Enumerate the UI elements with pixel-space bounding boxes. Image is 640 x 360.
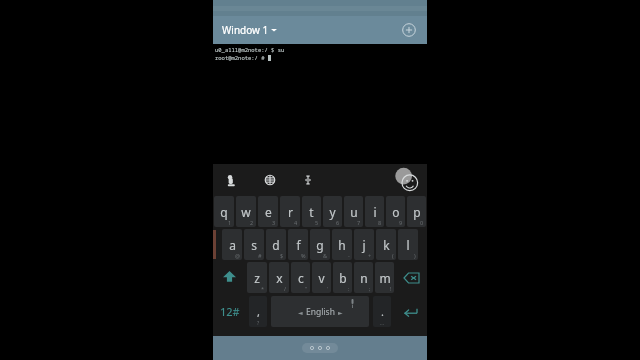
staticText: # <box>258 252 262 259</box>
button[interactable]: a <box>222 229 242 260</box>
staticText: j <box>362 237 366 253</box>
staticText: g <box>316 237 324 253</box>
staticText: ► <box>338 309 343 316</box>
button[interactable]: Move cursor <box>297 169 319 191</box>
staticText: l <box>406 237 410 253</box>
staticText: p <box>413 204 421 220</box>
staticText: c <box>298 270 304 286</box>
button[interactable]: 12# <box>213 294 247 329</box>
staticText: t <box>309 204 314 220</box>
staticText: i <box>373 204 377 220</box>
button[interactable]: i <box>365 196 384 227</box>
button[interactable]: Window 1 <box>220 21 279 39</box>
button[interactable]: c <box>291 262 310 293</box>
staticText: z <box>254 270 260 286</box>
staticText: ; <box>369 285 371 292</box>
staticText: ! <box>390 285 392 292</box>
button[interactable]: w <box>236 196 256 227</box>
staticText: 4 <box>294 219 298 226</box>
button[interactable]: q <box>214 196 234 227</box>
staticText: , <box>257 304 260 319</box>
staticText: English <box>306 306 335 318</box>
button[interactable]: y <box>323 196 342 227</box>
button[interactable]: Emoji <box>393 166 421 194</box>
staticText: Window 1 <box>222 23 269 37</box>
button[interactable]: Enter <box>393 294 427 329</box>
button[interactable]: z <box>247 262 267 293</box>
staticText: y <box>329 204 336 220</box>
staticText: 2 <box>250 219 254 226</box>
staticText: k <box>383 237 390 253</box>
staticText: + <box>368 252 372 259</box>
staticText: ) <box>414 252 416 259</box>
button[interactable]: l <box>398 229 418 260</box>
button[interactable]: r <box>280 196 300 227</box>
staticText: ? <box>257 320 260 327</box>
staticText: ' <box>327 285 329 292</box>
staticText: 3 <box>272 219 276 226</box>
staticText: : <box>348 285 350 292</box>
button[interactable]: Shift <box>215 263 244 292</box>
staticText: 5 <box>315 219 319 226</box>
staticText: m <box>379 270 391 286</box>
button[interactable]: p <box>407 196 426 227</box>
staticText: … <box>380 320 384 327</box>
staticText: o <box>392 204 400 220</box>
button[interactable]: Navigation <box>310 346 330 350</box>
button[interactable]: o <box>386 196 405 227</box>
staticText: 12# <box>220 304 240 319</box>
staticText: s <box>251 237 257 253</box>
staticText: 6 <box>336 219 340 226</box>
staticText: x <box>276 270 283 286</box>
staticText: / <box>284 285 287 292</box>
staticText: 1 <box>228 219 232 226</box>
button[interactable]: e <box>258 196 278 227</box>
button[interactable]: k <box>376 229 396 260</box>
button[interactable]: n <box>354 262 373 293</box>
button[interactable]: u <box>344 196 363 227</box>
button[interactable]: j <box>354 229 374 260</box>
staticText: * <box>261 285 265 292</box>
staticText: f <box>296 237 301 253</box>
staticText: v <box>318 270 325 286</box>
staticText: ◄ <box>298 309 303 316</box>
button[interactable]: t <box>302 196 321 227</box>
button[interactable]: m <box>375 262 394 293</box>
button[interactable]: v <box>312 262 331 293</box>
staticText: - <box>348 252 350 259</box>
button[interactable]: Language <box>259 169 281 191</box>
staticText: d <box>272 237 280 253</box>
staticText: u0_a111@m2note:/ $ su <box>215 46 285 53</box>
button[interactable]: h <box>332 229 352 260</box>
staticText: 8 <box>378 219 382 226</box>
staticText: ( <box>392 252 394 259</box>
staticText: a <box>229 237 236 253</box>
button[interactable]: New window <box>398 19 420 41</box>
staticText: u <box>350 204 358 220</box>
button[interactable]: f <box>288 229 308 260</box>
staticText: h <box>338 237 346 253</box>
button[interactable]: b <box>333 262 352 293</box>
button[interactable]: ◄ <box>271 296 369 327</box>
staticText: % <box>301 252 306 259</box>
staticText: e <box>265 204 272 220</box>
button[interactable]: Touch mode <box>221 169 243 191</box>
button[interactable]: g <box>310 229 330 260</box>
staticText: @ <box>235 252 240 259</box>
staticText: q <box>220 204 228 220</box>
button[interactable]: Backspace <box>397 263 425 292</box>
staticText: n <box>360 270 368 286</box>
button[interactable]: d <box>266 229 286 260</box>
staticText: . <box>381 304 384 319</box>
staticText: " <box>305 285 308 292</box>
staticText: b <box>339 270 347 286</box>
staticText: 0 <box>420 219 424 226</box>
staticText: r <box>288 204 293 220</box>
button[interactable]: . <box>373 296 391 327</box>
staticText: 9 <box>399 219 403 226</box>
button[interactable]: s <box>244 229 264 260</box>
button[interactable]: x <box>269 262 289 293</box>
staticText: $ <box>280 252 284 259</box>
staticText: w <box>241 204 251 220</box>
button[interactable]: , <box>249 296 267 327</box>
